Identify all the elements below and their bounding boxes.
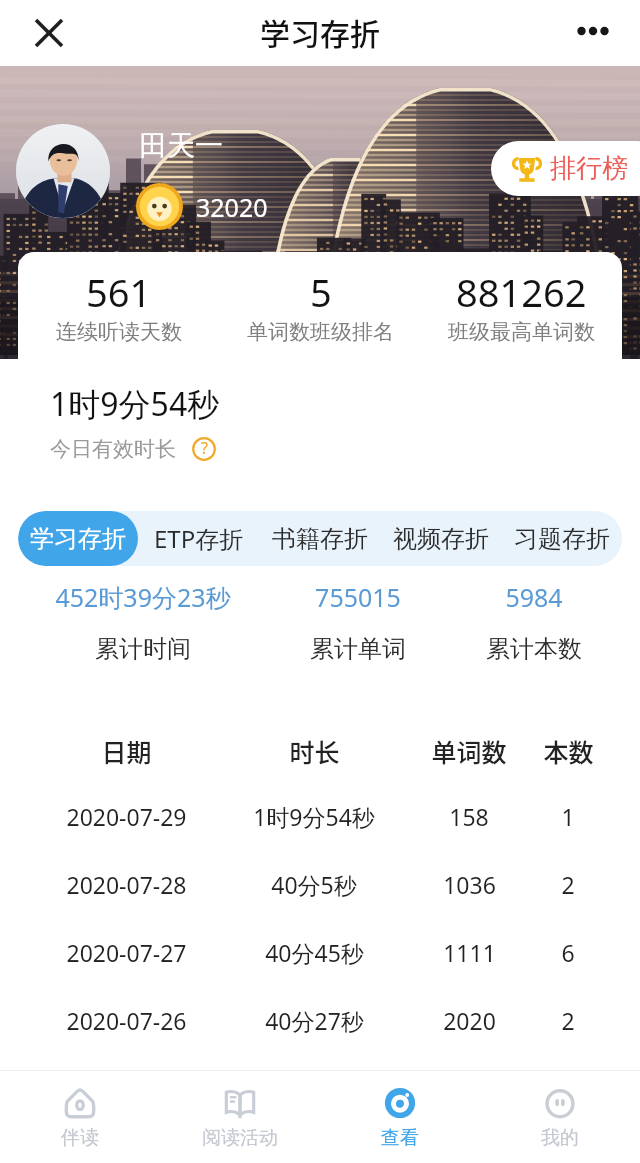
- staticText: ETP存折: [154, 522, 244, 555]
- staticText: 452时39分23秒: [55, 580, 231, 614]
- staticText: 班级最高单词数: [448, 319, 595, 345]
- staticText: 单词数班级排名: [247, 319, 394, 345]
- staticText: 1111: [443, 937, 496, 968]
- staticText: 755015: [315, 580, 401, 614]
- staticText: 学习存折: [260, 10, 380, 53]
- staticText: 6: [561, 937, 575, 968]
- staticText: 连续听读天数: [56, 319, 182, 345]
- staticText: 时长: [289, 733, 340, 769]
- staticText: 1时9分54秒: [50, 382, 220, 426]
- button[interactable]: 查看: [320, 1071, 480, 1163]
- staticText: 2020-07-27: [66, 937, 187, 968]
- staticText: 1: [561, 801, 575, 832]
- staticText: 书籍存折: [272, 524, 368, 554]
- staticText: 伴读: [61, 1126, 99, 1150]
- button[interactable]: 日期: [0, 720, 640, 782]
- button[interactable]: More options: [573, 11, 613, 51]
- staticText: 561: [86, 266, 152, 318]
- staticText: 日期: [101, 733, 152, 769]
- button[interactable]: 排行榜: [491, 141, 640, 196]
- button[interactable]: 书籍存折: [259, 511, 380, 566]
- button[interactable]: Close: [34, 18, 64, 48]
- button[interactable]: 学习存折: [18, 511, 138, 566]
- staticText: 排行榜: [550, 152, 628, 185]
- staticText: 2: [561, 1005, 575, 1036]
- button[interactable]: 2020-07-28: [0, 850, 640, 918]
- button[interactable]: 2020-07-27: [0, 918, 640, 986]
- staticText: 2020: [443, 1005, 496, 1036]
- staticText: 2020-07-29: [66, 801, 187, 832]
- staticText: 习题存折: [514, 524, 610, 554]
- staticText: 40分5秒: [271, 869, 357, 900]
- staticText: 40分45秒: [265, 937, 364, 968]
- button[interactable]: 2020-07-26: [0, 986, 640, 1054]
- staticText: 累计时间: [95, 634, 191, 664]
- button[interactable]: Profile avatar: [16, 124, 110, 218]
- button[interactable]: 视频存折: [380, 511, 501, 566]
- button[interactable]: 习题存折: [501, 511, 622, 566]
- staticText: 32020: [196, 190, 268, 224]
- button[interactable]: Help: [192, 437, 216, 461]
- staticText: 田天一: [139, 128, 223, 163]
- staticText: 累计本数: [486, 634, 582, 664]
- staticText: 单词数: [431, 733, 507, 769]
- staticText: 我的: [541, 1126, 579, 1150]
- button[interactable]: 阅读活动: [160, 1071, 320, 1163]
- staticText: 158: [449, 801, 489, 832]
- staticText: 1时9分54秒: [253, 801, 375, 832]
- staticText: 学习存折: [30, 524, 126, 554]
- staticText: 1036: [443, 869, 496, 900]
- staticText: 40分27秒: [265, 1005, 364, 1036]
- button[interactable]: 2020-07-29: [0, 782, 640, 850]
- staticText: 5: [310, 266, 332, 318]
- button[interactable]: 我的: [480, 1071, 640, 1163]
- staticText: 阅读活动: [202, 1126, 278, 1150]
- staticText: 查看: [381, 1126, 419, 1150]
- staticText: 今日有效时长: [50, 436, 176, 462]
- staticText: 累计单词: [310, 634, 406, 664]
- staticText: 2020-07-28: [66, 869, 187, 900]
- staticText: ?: [201, 437, 208, 459]
- staticText: 2020-07-26: [66, 1005, 187, 1036]
- button[interactable]: ETP存折: [138, 511, 259, 566]
- staticText: 5984: [505, 580, 563, 614]
- staticText: 本数: [543, 733, 594, 769]
- button[interactable]: 伴读: [0, 1071, 160, 1163]
- staticText: 881262: [456, 266, 587, 318]
- staticText: 视频存折: [393, 524, 489, 554]
- staticText: 2: [561, 869, 575, 900]
